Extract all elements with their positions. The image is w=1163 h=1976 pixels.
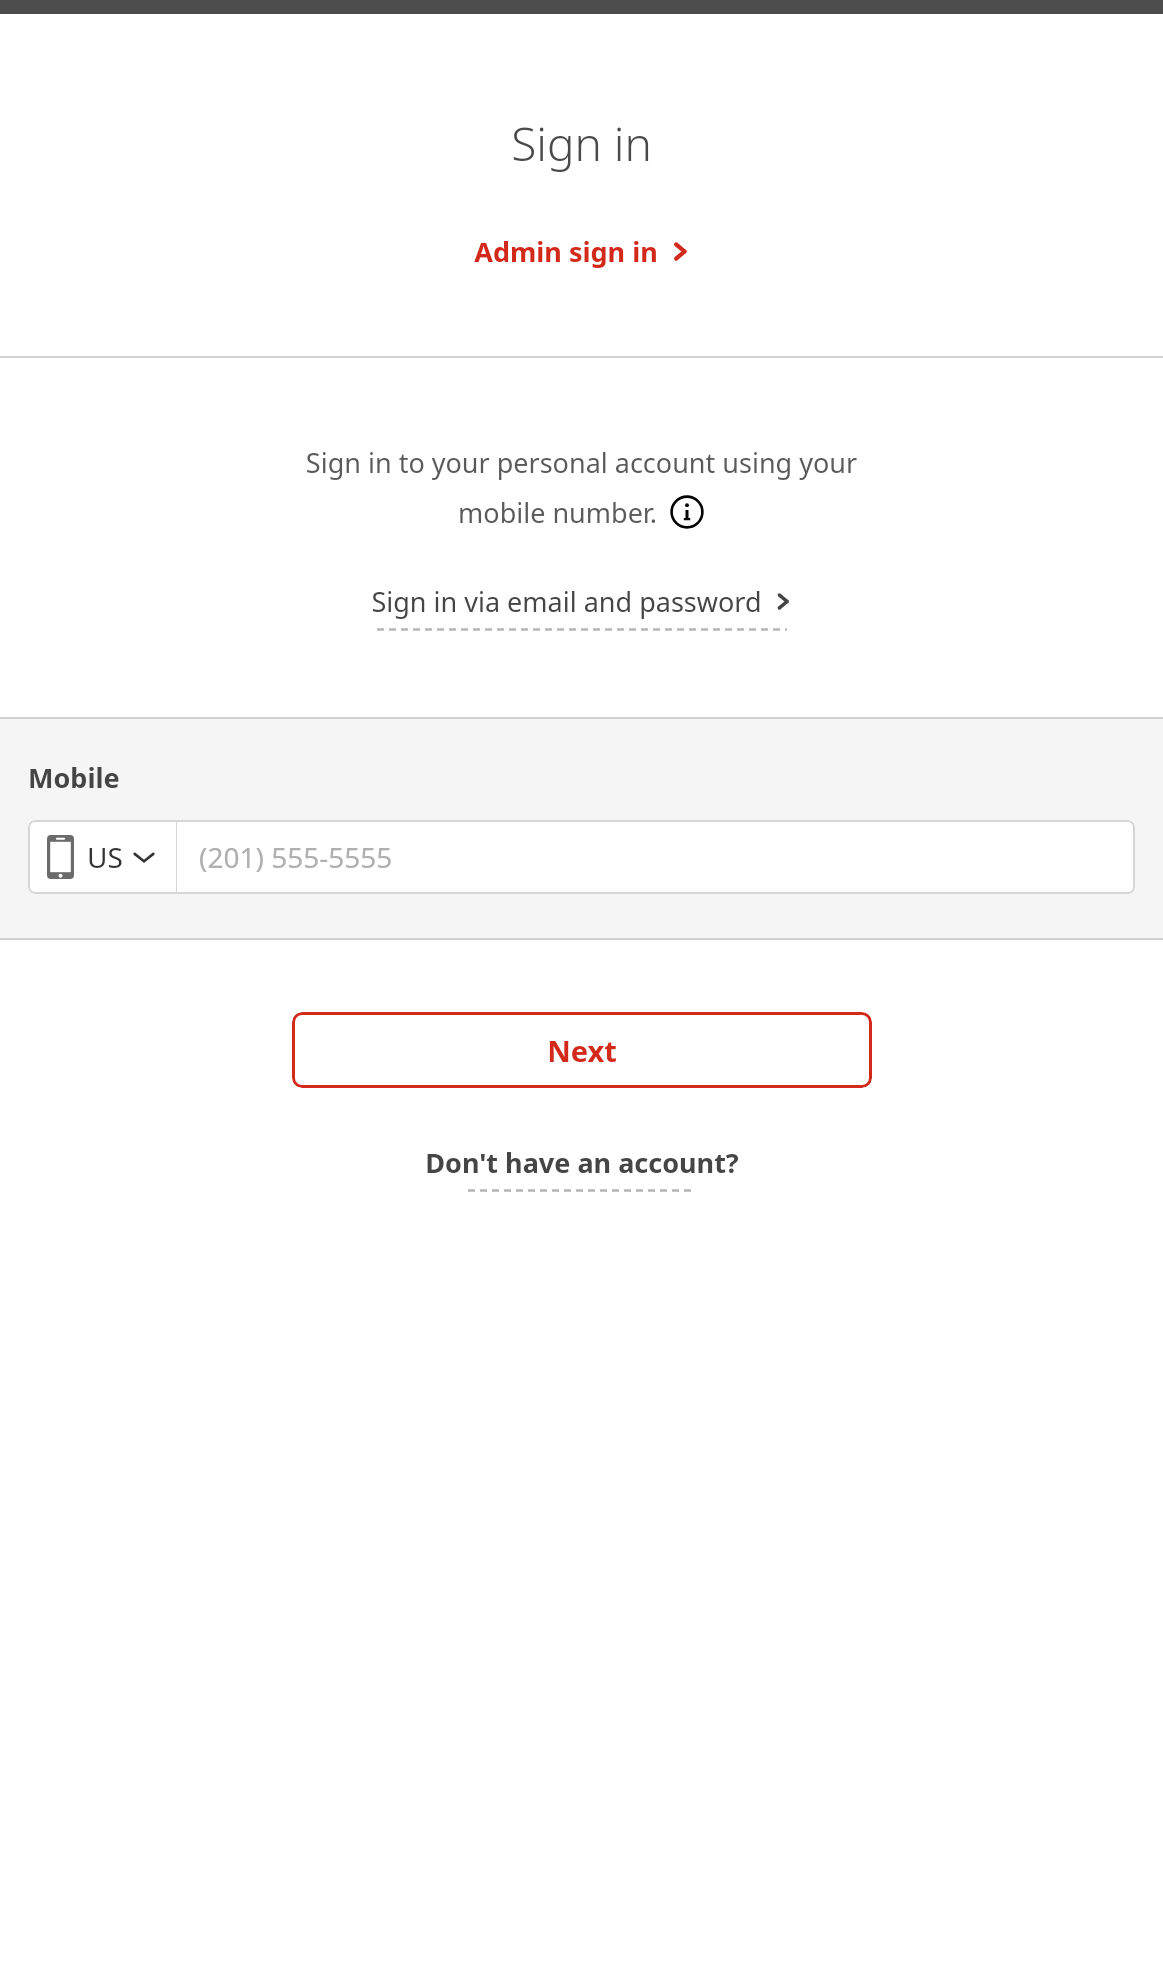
button[interactable]: (201) 555-5555: [177, 820, 1135, 894]
staticText: (201) 555-5555: [199, 838, 393, 876]
button[interactable]: Next: [292, 1012, 872, 1088]
button[interactable]: Select country code: [28, 820, 176, 894]
staticText: Sign in: [0, 112, 1163, 175]
staticText: Sign in via email and password: [371, 583, 762, 620]
staticText: Sign in to your personal account using y…: [40, 444, 1123, 481]
button[interactable]: More information: [668, 493, 706, 531]
staticText: US: [87, 838, 123, 876]
staticText: mobile number.: [458, 494, 657, 531]
staticText: Next: [547, 1031, 617, 1070]
button[interactable]: Sign in via email and password: [363, 579, 800, 635]
staticText: Don't have an account?: [425, 1144, 739, 1181]
button[interactable]: Don't have an account?: [417, 1140, 747, 1196]
staticText: Mobile: [28, 759, 120, 796]
staticText: Admin sign in: [474, 233, 658, 270]
button[interactable]: Admin sign in: [464, 227, 700, 276]
